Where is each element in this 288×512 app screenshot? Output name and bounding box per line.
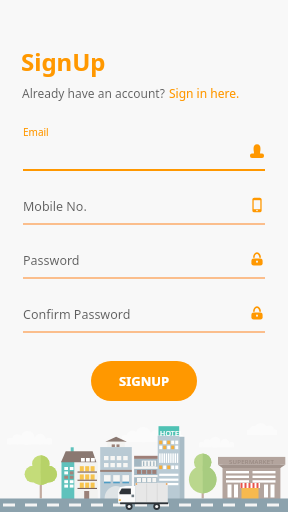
staticText: HOTEL xyxy=(160,429,183,439)
staticText: Confirm Password xyxy=(23,306,131,323)
staticText: SUPERMARKET xyxy=(229,458,275,466)
button[interactable]: Confirm Password xyxy=(0,283,288,337)
staticText: Password xyxy=(23,252,80,269)
button[interactable]: SIGNUP xyxy=(91,361,197,401)
other: Confirm password xyxy=(249,305,265,321)
staticText: SIGNUP xyxy=(119,372,170,390)
button[interactable]: Mobile No. xyxy=(0,175,288,229)
button[interactable]: Sign in here. xyxy=(169,85,240,101)
staticText: Mobile No. xyxy=(23,198,87,215)
button[interactable]: Password xyxy=(0,229,288,283)
other: Mobile number xyxy=(249,197,265,213)
staticText: Email xyxy=(23,125,49,139)
staticText: Already have an account? xyxy=(22,85,169,101)
other: Email xyxy=(249,143,265,159)
button[interactable]: Email xyxy=(0,121,288,175)
other: Password xyxy=(249,251,265,267)
staticText: SignUp xyxy=(21,45,106,78)
